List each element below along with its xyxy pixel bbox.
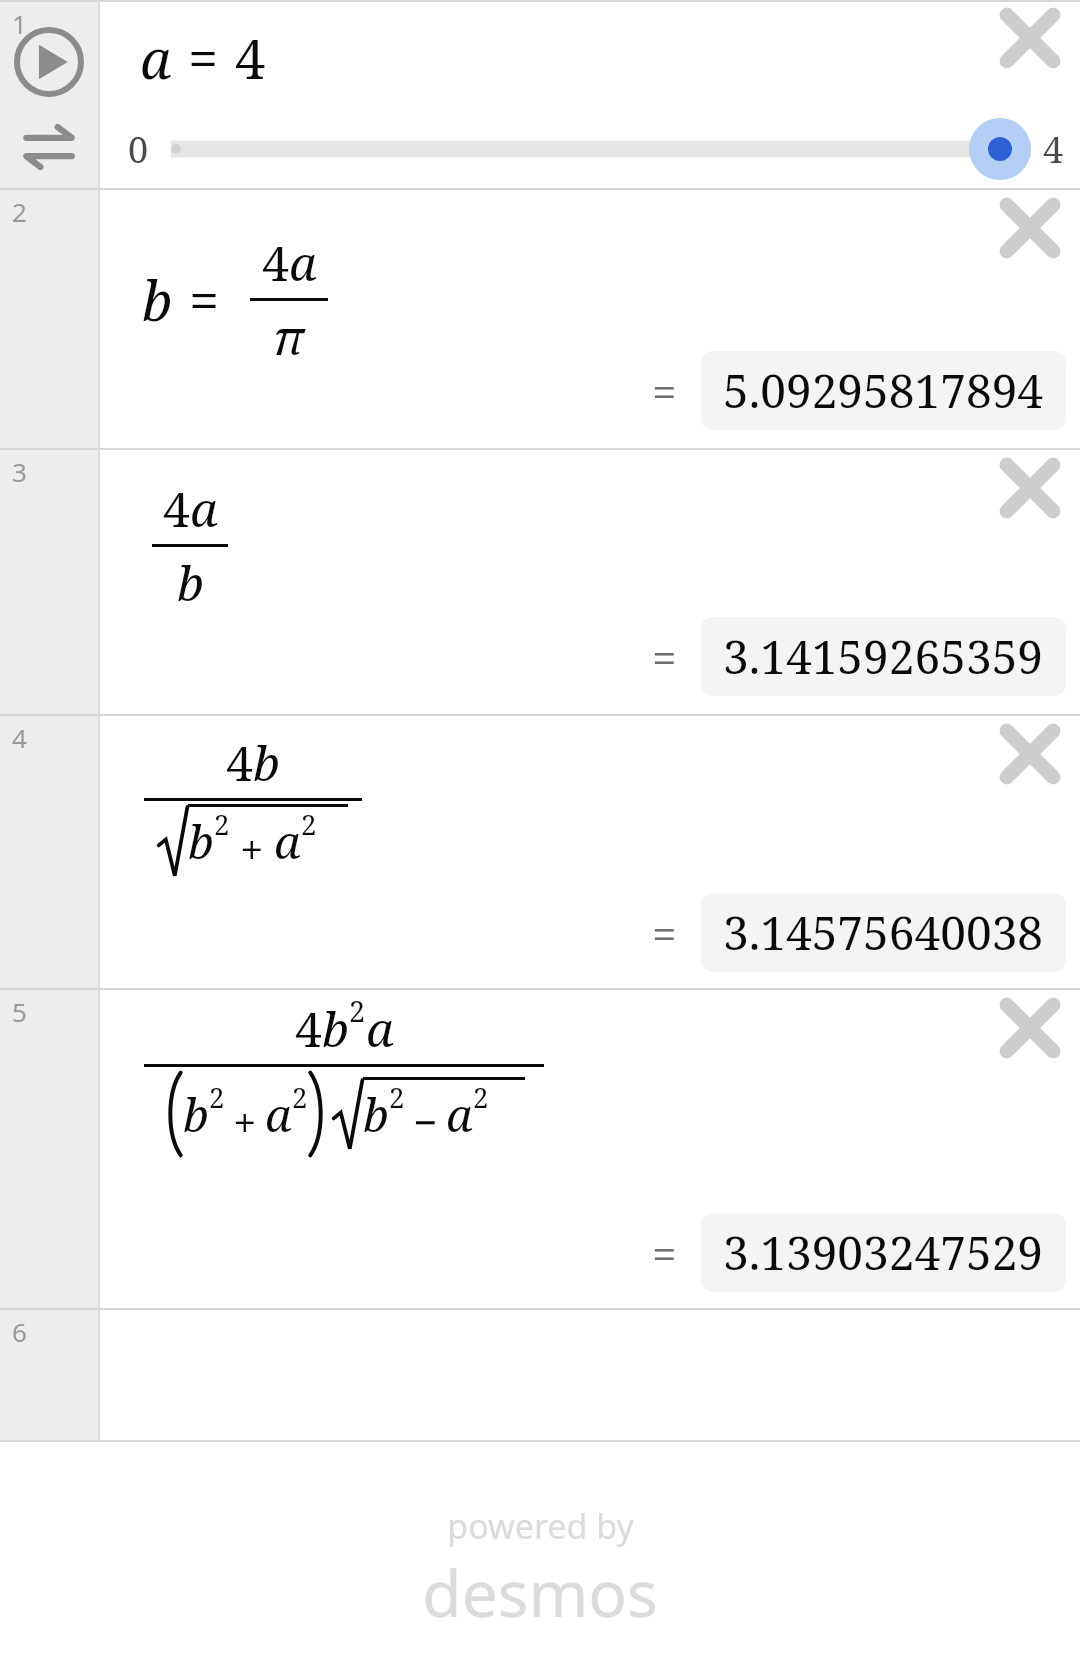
staticText: 6 [12, 1314, 27, 1349]
staticText: 1 [12, 6, 27, 41]
staticText: b [188, 810, 214, 873]
staticText: 4 [1043, 125, 1064, 174]
staticText: 4 [262, 230, 289, 295]
staticText: = [189, 263, 220, 337]
staticText: 4 [235, 21, 266, 95]
staticText: + [233, 1093, 257, 1150]
staticText: b [322, 996, 349, 1061]
staticText: 3 [12, 454, 27, 489]
staticText: 3.14575640038 [723, 901, 1044, 964]
button[interactable]: 3.13903247529 [701, 1213, 1066, 1292]
staticText: = [652, 361, 677, 421]
button[interactable]: a [100, 2, 1080, 188]
staticText: = [652, 903, 677, 963]
staticText: − [413, 1093, 438, 1150]
button[interactable]: Delete expression [982, 0, 1078, 86]
staticText: b [142, 263, 173, 337]
staticText: powered by [447, 1503, 634, 1549]
staticText: = [188, 21, 219, 95]
button[interactable]: Delete expression [100, 450, 1080, 714]
button[interactable]: 5 [0, 990, 98, 1308]
staticText: 5 [12, 994, 27, 1029]
staticText: 4 [295, 996, 322, 1061]
staticText: 2 [473, 1078, 489, 1116]
button[interactable]: 4 [0, 716, 98, 988]
staticText: 2 [292, 1078, 308, 1116]
staticText: π [273, 304, 305, 369]
button[interactable]: powered by [422, 1503, 658, 1636]
staticText: 2 [214, 805, 230, 843]
staticText: b [177, 550, 204, 615]
staticText: a [140, 21, 172, 95]
staticText: b [183, 1083, 209, 1146]
staticText: = [652, 1223, 677, 1283]
staticText: 4 [12, 720, 27, 755]
staticText: desmos [422, 1549, 658, 1636]
staticText: 4 [163, 476, 190, 541]
staticText: + [240, 820, 264, 877]
staticText: a [190, 476, 218, 541]
button[interactable]: 3.14575640038 [701, 893, 1066, 972]
button[interactable]: Delete expression [982, 440, 1078, 536]
button[interactable]: 3.14159265359 [701, 617, 1066, 696]
staticText: a [289, 230, 317, 295]
staticText: 2 [389, 1078, 405, 1116]
button[interactable]: Change animation direction [18, 116, 80, 178]
staticText: a [366, 996, 394, 1061]
button[interactable]: Delete expression [100, 990, 1080, 1308]
staticText: 2 [301, 805, 317, 843]
button[interactable]: Delete expression [100, 716, 1080, 988]
staticText: 2 [349, 991, 366, 1030]
staticText: b [363, 1083, 389, 1146]
button[interactable]: 1 [0, 2, 98, 188]
button[interactable]: Delete expression [100, 190, 1080, 448]
button[interactable]: 6 [0, 1310, 98, 1440]
staticText: a [274, 810, 301, 873]
staticText: 2 [12, 194, 27, 229]
staticText: a [446, 1083, 473, 1146]
button[interactable]: Delete expression [982, 980, 1078, 1076]
button[interactable]: 3 [0, 450, 98, 714]
staticText: a [265, 1083, 292, 1146]
staticText: = [652, 627, 677, 687]
button[interactable]: Play animation [11, 24, 87, 100]
staticText: 0 [128, 125, 149, 174]
staticText: 3.14159265359 [723, 625, 1044, 688]
staticText: 3.13903247529 [723, 1221, 1044, 1284]
button[interactable]: Slider for a [171, 117, 1031, 181]
button[interactable]: Delete expression [982, 180, 1078, 276]
button[interactable]: Delete expression [982, 706, 1078, 802]
staticText: 4 [226, 730, 253, 795]
staticText: 2 [209, 1078, 225, 1116]
staticText: b [253, 730, 280, 795]
button[interactable]: 2 [0, 190, 98, 448]
button[interactable]: 5.09295817894 [701, 351, 1066, 430]
staticText: 5.09295817894 [723, 359, 1044, 422]
